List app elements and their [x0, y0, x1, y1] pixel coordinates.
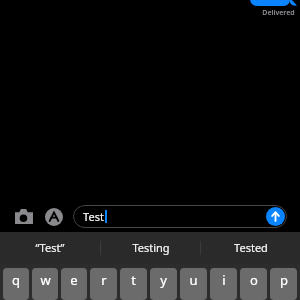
button[interactable]: Testing [101, 232, 200, 263]
button[interactable]: u [180, 268, 207, 300]
button[interactable]: e [61, 268, 87, 300]
staticText: i [222, 271, 226, 289]
staticText: u [189, 271, 198, 289]
staticText: w [40, 271, 51, 289]
staticText: Testing [132, 240, 170, 255]
staticText: q [12, 271, 20, 289]
staticText: o [250, 271, 258, 289]
staticText: “Test” [35, 240, 65, 255]
button[interactable]: w [32, 268, 58, 300]
staticText: p [280, 271, 288, 289]
button[interactable]: y [150, 268, 177, 300]
button[interactable]: Send [266, 207, 285, 226]
staticText: Tested [234, 240, 268, 255]
staticText: e [70, 271, 78, 289]
button[interactable]: p [270, 268, 297, 300]
staticText: Test [83, 209, 104, 224]
button[interactable]: Apps [43, 206, 64, 227]
button[interactable]: Tested [201, 232, 300, 263]
button[interactable]: Test [73, 205, 287, 228]
staticText: t [131, 271, 136, 289]
button[interactable]: i [210, 268, 237, 300]
staticText: Delivered [262, 8, 295, 18]
button[interactable]: “Test” [0, 232, 100, 263]
staticText: y [160, 271, 167, 289]
button[interactable]: t [120, 268, 147, 300]
button[interactable]: q [3, 268, 29, 300]
button[interactable]: r [90, 268, 117, 300]
button[interactable]: Camera [13, 205, 35, 227]
staticText: r [101, 271, 107, 289]
button[interactable]: o [240, 268, 267, 300]
